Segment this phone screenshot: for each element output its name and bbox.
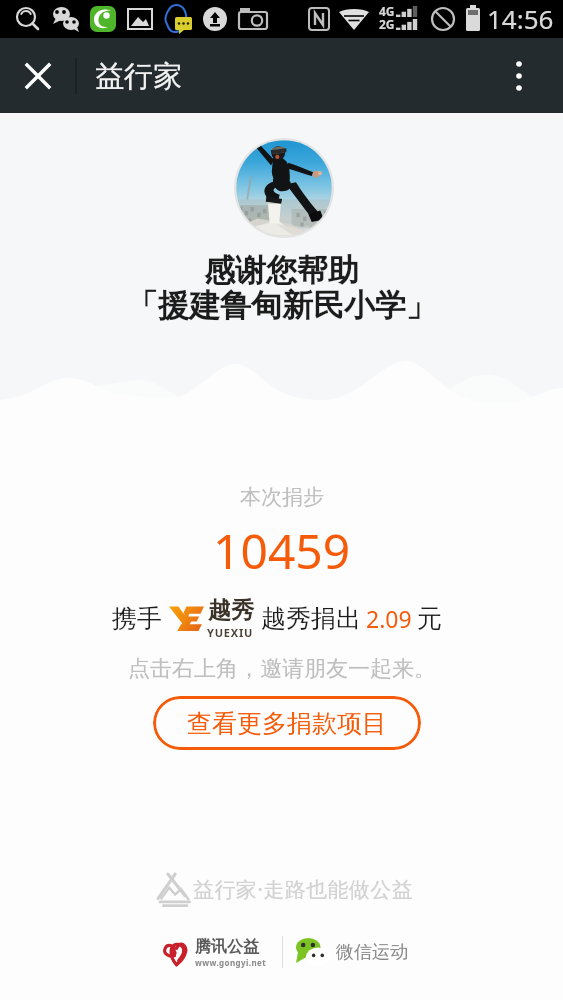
button[interactable]: 查看更多捐款项目 [153, 696, 421, 750]
staticText: 2G [379, 16, 395, 32]
staticText: www.gongyi.net [195, 957, 267, 968]
staticText: 携手 [112, 603, 162, 634]
button[interactable]: Close [0, 38, 76, 113]
staticText: 越秀捐出 [261, 603, 361, 634]
staticText: 元 [417, 603, 442, 634]
staticText: 「援建鲁甸新民小学」 [127, 286, 437, 325]
button[interactable]: More options [475, 38, 563, 113]
staticText: 益行家 [95, 58, 182, 95]
staticText: 微信运动 [336, 941, 408, 964]
button[interactable]: 腾讯公益 www.gongyi.net [162, 937, 267, 968]
button[interactable]: 微信运动 [296, 938, 408, 967]
staticText: 4G [379, 3, 395, 19]
staticText: 2.09 [366, 603, 412, 634]
staticText: 感谢您帮助 [204, 251, 359, 290]
staticText: YUEXIU [207, 625, 254, 640]
staticText: 越秀 [208, 596, 254, 625]
staticText: 腾讯公益 [195, 937, 259, 957]
staticText: 本次捐步 [240, 484, 324, 510]
staticText: 益行家·走路也能做公益 [193, 875, 414, 904]
staticText: 查看更多捐款项目 [187, 708, 387, 739]
staticText: 10459 [213, 518, 351, 583]
staticText: 点击右上角，邀请朋友一起来。 [128, 655, 436, 683]
staticText: 14:56 [487, 1, 554, 36]
